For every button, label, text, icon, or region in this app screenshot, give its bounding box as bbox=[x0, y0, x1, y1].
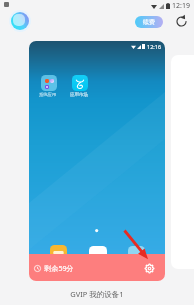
button[interactable]: 续费 bbox=[135, 16, 163, 28]
staticText: 系统应用 bbox=[39, 92, 57, 97]
button[interactable]: 12:16 bbox=[29, 41, 165, 281]
button[interactable]: Files bbox=[50, 245, 67, 262]
button[interactable]: Gallery bbox=[89, 246, 107, 264]
staticText: 剩余59分 bbox=[44, 263, 74, 273]
staticText: 续费 bbox=[143, 18, 155, 26]
button[interactable]: Refresh bbox=[173, 13, 189, 29]
button[interactable]: System apps folder bbox=[41, 75, 57, 91]
button[interactable]: App market bbox=[72, 75, 88, 91]
button[interactable]: Settings bbox=[142, 261, 156, 275]
button[interactable]: App bbox=[128, 246, 145, 263]
staticText: GVIP 我的设备1 bbox=[0, 289, 194, 299]
button[interactable]: Profile bbox=[9, 10, 31, 32]
staticText: 应用市场 bbox=[70, 92, 88, 98]
staticText: 12:19 bbox=[172, 1, 190, 11]
staticText: 12:16 bbox=[147, 43, 162, 50]
